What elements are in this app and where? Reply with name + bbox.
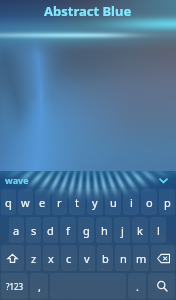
staticText: e bbox=[39, 195, 46, 210]
staticText: a bbox=[13, 223, 20, 238]
staticText: x bbox=[48, 251, 54, 266]
staticText: u bbox=[110, 195, 117, 210]
button[interactable]: k bbox=[132, 217, 148, 243]
button[interactable]: Backspace bbox=[151, 245, 175, 271]
button[interactable]: . bbox=[128, 273, 146, 299]
button[interactable]: o bbox=[141, 189, 157, 215]
staticText: b bbox=[102, 251, 109, 266]
button[interactable]: b bbox=[97, 245, 113, 271]
button[interactable]: u bbox=[105, 189, 121, 215]
button[interactable]: v bbox=[79, 245, 95, 271]
staticText: l bbox=[157, 223, 160, 238]
button[interactable]: p bbox=[159, 189, 175, 215]
button[interactable]: y bbox=[87, 189, 103, 215]
button[interactable]: l bbox=[150, 217, 166, 243]
button[interactable]: w bbox=[18, 189, 33, 215]
button[interactable]: ?123 bbox=[1, 273, 28, 299]
button[interactable]: Search bbox=[148, 273, 175, 299]
button[interactable]: , bbox=[30, 273, 48, 299]
staticText: wave bbox=[5, 174, 29, 186]
staticText: f bbox=[66, 223, 70, 238]
staticText: , bbox=[38, 279, 41, 294]
staticText: j bbox=[121, 223, 124, 238]
staticText: d bbox=[47, 223, 54, 238]
button[interactable]: wave bbox=[5, 174, 29, 186]
button[interactable]: s bbox=[26, 217, 41, 243]
button[interactable]: g bbox=[78, 217, 94, 243]
staticText: y bbox=[92, 195, 98, 210]
staticText: p bbox=[164, 195, 171, 210]
button[interactable]: z bbox=[26, 245, 41, 271]
staticText: w bbox=[21, 195, 30, 210]
button[interactable]: m bbox=[133, 245, 149, 271]
button[interactable]: r bbox=[52, 189, 67, 215]
staticText: q bbox=[5, 195, 12, 210]
button[interactable]: n bbox=[115, 245, 131, 271]
staticText: ?123 bbox=[6, 281, 24, 292]
staticText: h bbox=[101, 223, 108, 238]
staticText: n bbox=[120, 251, 127, 266]
staticText: k bbox=[137, 223, 143, 238]
staticText: v bbox=[84, 251, 90, 266]
button[interactable]: t bbox=[69, 189, 85, 215]
button[interactable]: Shift bbox=[1, 245, 24, 271]
staticText: o bbox=[146, 195, 153, 210]
button[interactable]: d bbox=[43, 217, 58, 243]
staticText: t bbox=[75, 195, 79, 210]
staticText: g bbox=[83, 223, 90, 238]
staticText: Abstract Blue bbox=[44, 2, 132, 20]
staticText: r bbox=[57, 195, 62, 210]
staticText: s bbox=[31, 223, 37, 238]
button[interactable]: f bbox=[60, 217, 76, 243]
staticText: . bbox=[136, 279, 139, 294]
button[interactable]: e bbox=[35, 189, 50, 215]
button[interactable]: i bbox=[123, 189, 139, 215]
staticText: i bbox=[130, 195, 133, 210]
button[interactable]: a bbox=[9, 217, 24, 243]
button[interactable]: Expand suggestions bbox=[156, 173, 170, 187]
staticText: c bbox=[66, 251, 72, 266]
staticText: m bbox=[136, 251, 147, 266]
button[interactable]: h bbox=[96, 217, 112, 243]
staticText: z bbox=[31, 251, 37, 266]
button[interactable]: c bbox=[61, 245, 77, 271]
button[interactable]: j bbox=[114, 217, 130, 243]
button[interactable]: x bbox=[43, 245, 59, 271]
button[interactable]: q bbox=[1, 189, 16, 215]
